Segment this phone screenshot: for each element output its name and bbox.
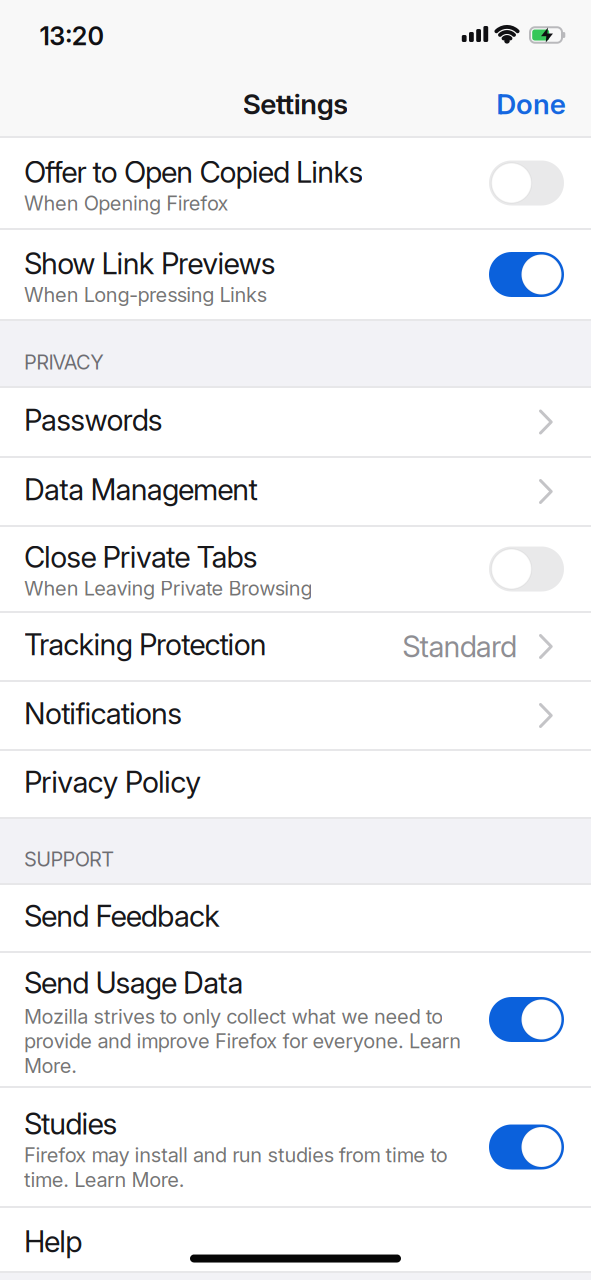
staticText: Firefox may install and run studies from… — [24, 1143, 448, 1167]
staticText: Notifications — [24, 696, 182, 731]
staticText: Show Link Previews — [24, 246, 276, 281]
staticText: Close Private Tabs — [24, 540, 258, 574]
staticText: Data Management — [24, 472, 257, 507]
button[interactable]: Tracking Protection — [0, 613, 591, 682]
staticText: Send Usage Data — [24, 966, 243, 1000]
button[interactable]: Data Management — [0, 458, 591, 527]
button[interactable]: Close Private Tabs — [489, 546, 564, 591]
button[interactable]: Studies — [489, 1124, 564, 1169]
staticText: Done — [496, 87, 566, 120]
staticText: Passwords — [24, 403, 163, 437]
staticText: Studies — [24, 1107, 118, 1141]
button[interactable]: Help — [0, 1208, 591, 1273]
staticText: Help — [24, 1224, 82, 1259]
staticText: Settings — [243, 87, 348, 120]
staticText: SUPPORT — [24, 847, 114, 871]
staticText: When Long-pressing Links — [24, 283, 267, 307]
staticText: Tracking Protection — [24, 627, 267, 662]
staticText: provide and improve Firefox for everyone… — [24, 1029, 461, 1053]
staticText: When Leaving Private Browsing — [24, 576, 312, 600]
button[interactable]: Show Link Previews — [489, 252, 564, 297]
staticText: When Opening Firefox — [24, 191, 228, 215]
staticText: Offer to Open Copied Links — [24, 155, 363, 189]
button[interactable]: Send Usage Data — [489, 997, 564, 1042]
staticText: Privacy Policy — [24, 765, 201, 799]
staticText: 13:20 — [39, 21, 105, 51]
button[interactable]: Passwords — [0, 388, 591, 458]
button[interactable]: Offer to Open Copied Links — [489, 160, 564, 205]
staticText: Standard — [402, 629, 517, 664]
button[interactable]: Done — [496, 87, 566, 120]
button[interactable]: Send Feedback — [0, 885, 591, 953]
staticText: More. — [24, 1054, 77, 1077]
staticText: Send Feedback — [24, 899, 220, 933]
staticText: PRIVACY — [24, 350, 104, 374]
button[interactable]: Notifications — [0, 682, 591, 751]
staticText: time. Learn More. — [24, 1168, 185, 1191]
staticText: Mozilla strives to only collect what we … — [24, 1005, 443, 1028]
button[interactable]: Privacy Policy — [0, 751, 591, 819]
